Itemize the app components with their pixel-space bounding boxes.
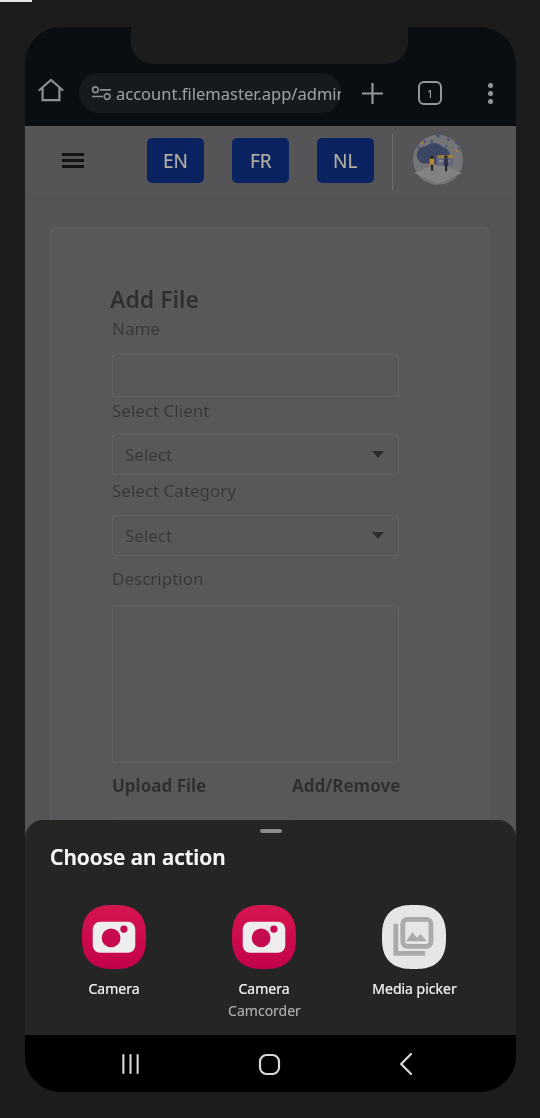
staticText: Select Client <box>112 399 210 422</box>
button[interactable]: Home <box>244 1039 294 1089</box>
button[interactable]: More options <box>468 71 512 115</box>
button[interactable]: Tabs <box>410 73 450 113</box>
button[interactable]: Select <box>112 515 399 556</box>
button[interactable]: Recents <box>105 1039 155 1089</box>
staticText: FR <box>250 148 272 174</box>
staticText: 1 <box>427 86 434 101</box>
staticText: Add File <box>110 283 200 314</box>
staticText: EN <box>163 148 189 174</box>
button[interactable]: account.filemaster.app/admin <box>79 73 341 113</box>
button[interactable]: Media picker <box>364 905 464 998</box>
staticText: Camcorder <box>228 1001 301 1020</box>
staticText: Select Category <box>112 479 237 502</box>
button[interactable]: Camera <box>64 905 164 998</box>
button[interactable]: FR <box>232 138 289 183</box>
staticText: Choose an action <box>50 843 226 872</box>
staticText: account.filemaster.app/admin <box>116 82 341 104</box>
staticText: Camera <box>88 979 140 998</box>
button[interactable]: Home <box>29 69 73 113</box>
button[interactable]: Menu <box>51 138 95 182</box>
button[interactable]: Camera <box>214 905 314 1020</box>
staticText: Camera <box>238 979 290 998</box>
staticText: Select <box>125 524 173 547</box>
staticText: Upload File <box>112 774 207 797</box>
button[interactable]: NL <box>317 138 374 183</box>
staticText: Media picker <box>372 979 457 998</box>
staticText: NL <box>333 148 358 174</box>
button[interactable]: Back <box>381 1039 431 1089</box>
staticText: Add/Remove <box>292 774 401 797</box>
button[interactable]: New tab <box>350 71 394 115</box>
staticText: Select <box>125 443 173 466</box>
staticText: Name <box>112 317 160 340</box>
button[interactable] <box>112 817 290 859</box>
button[interactable]: Select <box>112 434 399 475</box>
button[interactable]: EN <box>147 138 204 183</box>
staticText: Description <box>112 567 204 590</box>
